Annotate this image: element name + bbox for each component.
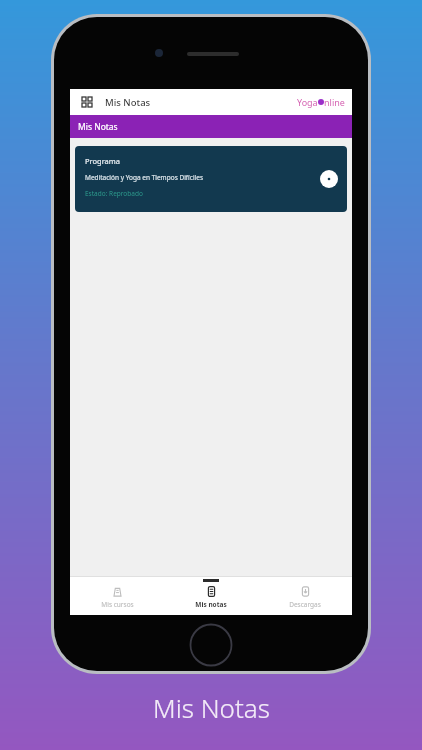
staticText: Meditación y Yoga en Tiempos Difíciles	[85, 173, 204, 182]
staticText: nline	[324, 96, 345, 108]
staticText: Programa	[85, 156, 121, 166]
staticText: Mis Notas	[105, 96, 151, 109]
button[interactable]: Mis notas	[164, 577, 258, 615]
staticText: Descargas	[289, 600, 321, 609]
button[interactable]: Mis cursos	[70, 577, 164, 615]
staticText: Mis notas	[195, 600, 227, 609]
staticText: Mis Notas	[78, 121, 118, 133]
staticText: Mis cursos	[101, 600, 134, 609]
button[interactable]: Más opciones	[320, 170, 338, 188]
staticText: Mis Notas	[153, 690, 270, 725]
button[interactable]: Descargas	[258, 577, 352, 615]
staticText: Yoga	[297, 96, 318, 108]
button[interactable]: Programa	[75, 146, 347, 212]
button[interactable]: Menu	[77, 92, 97, 112]
staticText: Estado: Reprobado	[85, 189, 143, 198]
